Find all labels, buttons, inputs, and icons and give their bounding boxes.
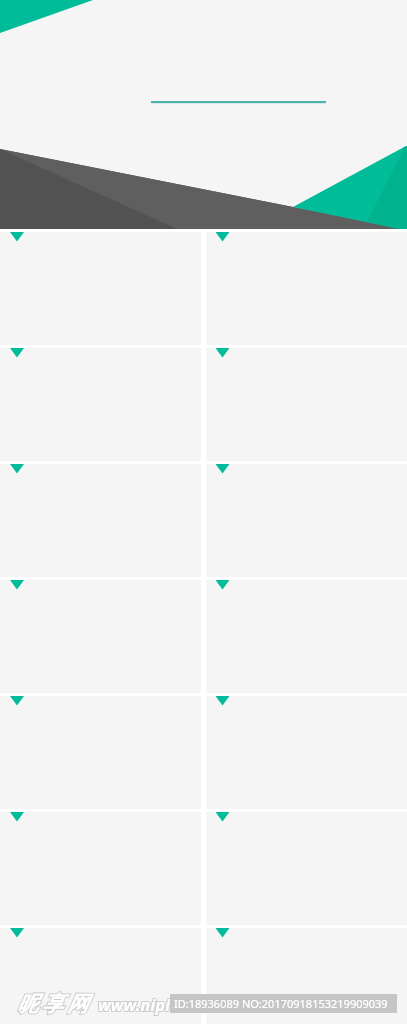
button[interactable] [0, 696, 201, 809]
button[interactable] [0, 580, 201, 693]
button[interactable] [0, 232, 201, 345]
staticText: 昵享网 [15, 991, 90, 1017]
button[interactable] [206, 232, 407, 345]
button[interactable] [206, 348, 407, 461]
staticText: ID:18936089 NO:20170918153219909039 [174, 996, 388, 1011]
staticText: 昵享网 [15, 991, 90, 1017]
button[interactable] [206, 580, 407, 693]
button[interactable] [0, 464, 201, 577]
staticText: www.nipic.com [98, 994, 216, 1016]
button[interactable] [206, 464, 407, 577]
button[interactable] [0, 348, 201, 461]
staticText: www.nipic.com [98, 994, 216, 1016]
button[interactable] [206, 812, 407, 925]
button[interactable] [0, 812, 201, 925]
button[interactable] [206, 696, 407, 809]
button[interactable] [206, 928, 407, 1024]
button[interactable] [0, 928, 201, 1024]
